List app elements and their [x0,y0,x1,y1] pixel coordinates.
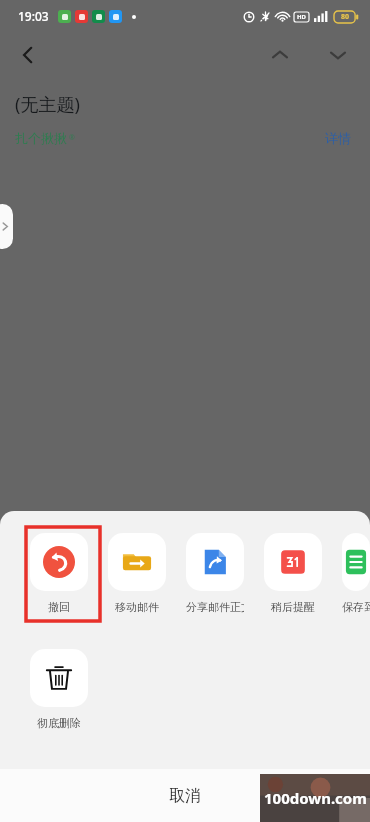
button[interactable]: 上一封 [260,35,300,75]
staticText: 撤回 [48,600,70,614]
staticText: (无主题) [15,92,80,117]
staticText: 100down.com [264,788,367,808]
button[interactable]: 稍后提醒 [264,533,322,614]
staticText: 扎个揪揪 [15,130,67,146]
button[interactable]: 返回 [6,33,50,77]
button[interactable]: 分享邮件正文 [186,533,244,614]
staticText: 取消 [169,786,201,806]
staticText: ® [69,133,75,143]
button[interactable]: 详情 [321,126,355,150]
button[interactable]: 下一封 [318,35,358,75]
button[interactable]: 取消 [0,769,370,822]
staticText: 19:03 [18,8,49,24]
button[interactable]: 保存到 [342,533,370,614]
staticText: 详情 [325,130,351,146]
staticText: 保存到 [342,600,370,614]
button[interactable]: 展开侧栏 [0,204,13,249]
button[interactable]: 彻底删除 [30,649,88,730]
staticText: 分享邮件正文 [186,600,244,614]
staticText: HD [297,13,306,21]
staticText: 稍后提醒 [271,600,315,614]
button[interactable]: 移动邮件 [108,533,166,614]
staticText: 彻底删除 [37,716,81,730]
staticText: 移动邮件 [115,600,159,614]
button[interactable]: 撤回 [30,533,88,614]
staticText: 80 [341,12,350,22]
